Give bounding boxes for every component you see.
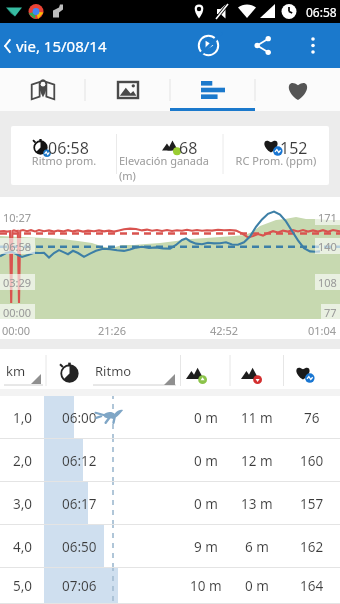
staticText: Ritmo xyxy=(95,362,132,380)
button[interactable]: Map tab xyxy=(0,68,85,111)
button[interactable]: 3,0 xyxy=(0,482,340,525)
button[interactable]: 06:58 xyxy=(11,126,117,185)
staticText: Ritmo prom. xyxy=(13,153,115,168)
button[interactable]: Play xyxy=(186,23,230,68)
staticText: 07:06 xyxy=(62,577,97,595)
staticText: 0 m xyxy=(245,577,269,595)
staticText: vie, 15/08/14 xyxy=(16,36,107,56)
staticText: RC Prom. (ppm) xyxy=(225,153,327,168)
staticText: 06:58 xyxy=(48,137,89,159)
staticText: 108 xyxy=(318,275,337,290)
staticText: Elevación ganada (m) xyxy=(119,153,222,183)
button[interactable]: More options xyxy=(293,23,333,68)
staticText: 13 m xyxy=(241,495,273,513)
staticText: 42:52 xyxy=(210,323,239,338)
staticText: 06:50 xyxy=(62,538,97,556)
staticText: 162 xyxy=(300,538,324,556)
button[interactable]: Photos tab xyxy=(85,68,170,111)
button[interactable]: 2,0 xyxy=(0,439,340,482)
button[interactable]: Elevation gain xyxy=(181,349,230,389)
button[interactable]: Share xyxy=(240,23,284,68)
staticText: 01:04 xyxy=(308,323,337,338)
button[interactable]: 68 xyxy=(117,126,224,185)
staticText: 171 xyxy=(318,210,337,225)
staticText: 160 xyxy=(300,452,324,470)
staticText: 06:00 xyxy=(62,409,97,427)
staticText: 0 m xyxy=(194,452,218,470)
button[interactable]: 1,0 xyxy=(0,396,340,439)
staticText: 164 xyxy=(300,577,324,595)
staticText: 77 xyxy=(324,305,337,320)
staticText: 0 m xyxy=(194,495,218,513)
button[interactable]: 5,0 xyxy=(0,568,340,604)
staticText: 140 xyxy=(318,239,337,254)
button[interactable]: Heart rate xyxy=(284,349,340,389)
staticText: 76 xyxy=(304,409,320,427)
staticText: 6 m xyxy=(245,538,269,556)
staticText: km xyxy=(6,362,26,380)
button[interactable]: km xyxy=(0,349,46,389)
staticText: 157 xyxy=(300,495,324,513)
staticText: 06:58 xyxy=(306,4,337,20)
button[interactable]: 152 xyxy=(223,126,329,185)
staticText: 4,0 xyxy=(13,538,33,556)
button[interactable]: Ritmo xyxy=(47,349,180,389)
staticText: 11 m xyxy=(241,409,273,427)
staticText: 00:00 xyxy=(2,323,31,338)
button[interactable]: 4,0 xyxy=(0,525,340,568)
staticText: 3,0 xyxy=(13,495,33,513)
staticText: 06:12 xyxy=(62,452,97,470)
staticText: 0 m xyxy=(194,409,218,427)
staticText: 10 m xyxy=(190,577,222,595)
staticText: 06:17 xyxy=(62,495,97,513)
staticText: 06:58 xyxy=(3,239,32,254)
button[interactable]: Elevation loss xyxy=(230,349,283,389)
button[interactable]: vie, 15/08/14 xyxy=(0,28,113,64)
button[interactable]: Heart rate tab xyxy=(255,68,340,111)
staticText: 2,0 xyxy=(13,452,33,470)
staticText: 9 m xyxy=(194,538,218,556)
staticText: 00:00 xyxy=(3,305,32,320)
staticText: 68 xyxy=(179,137,198,159)
staticText: 5,0 xyxy=(13,577,33,595)
staticText: 12 m xyxy=(241,452,273,470)
staticText: 10:27 xyxy=(3,210,32,225)
staticText: 03:29 xyxy=(3,275,32,290)
staticText: 152 xyxy=(280,137,308,159)
staticText: 21:26 xyxy=(98,323,127,338)
button[interactable]: Charts tab xyxy=(170,68,255,111)
staticText: 1,0 xyxy=(13,409,33,427)
